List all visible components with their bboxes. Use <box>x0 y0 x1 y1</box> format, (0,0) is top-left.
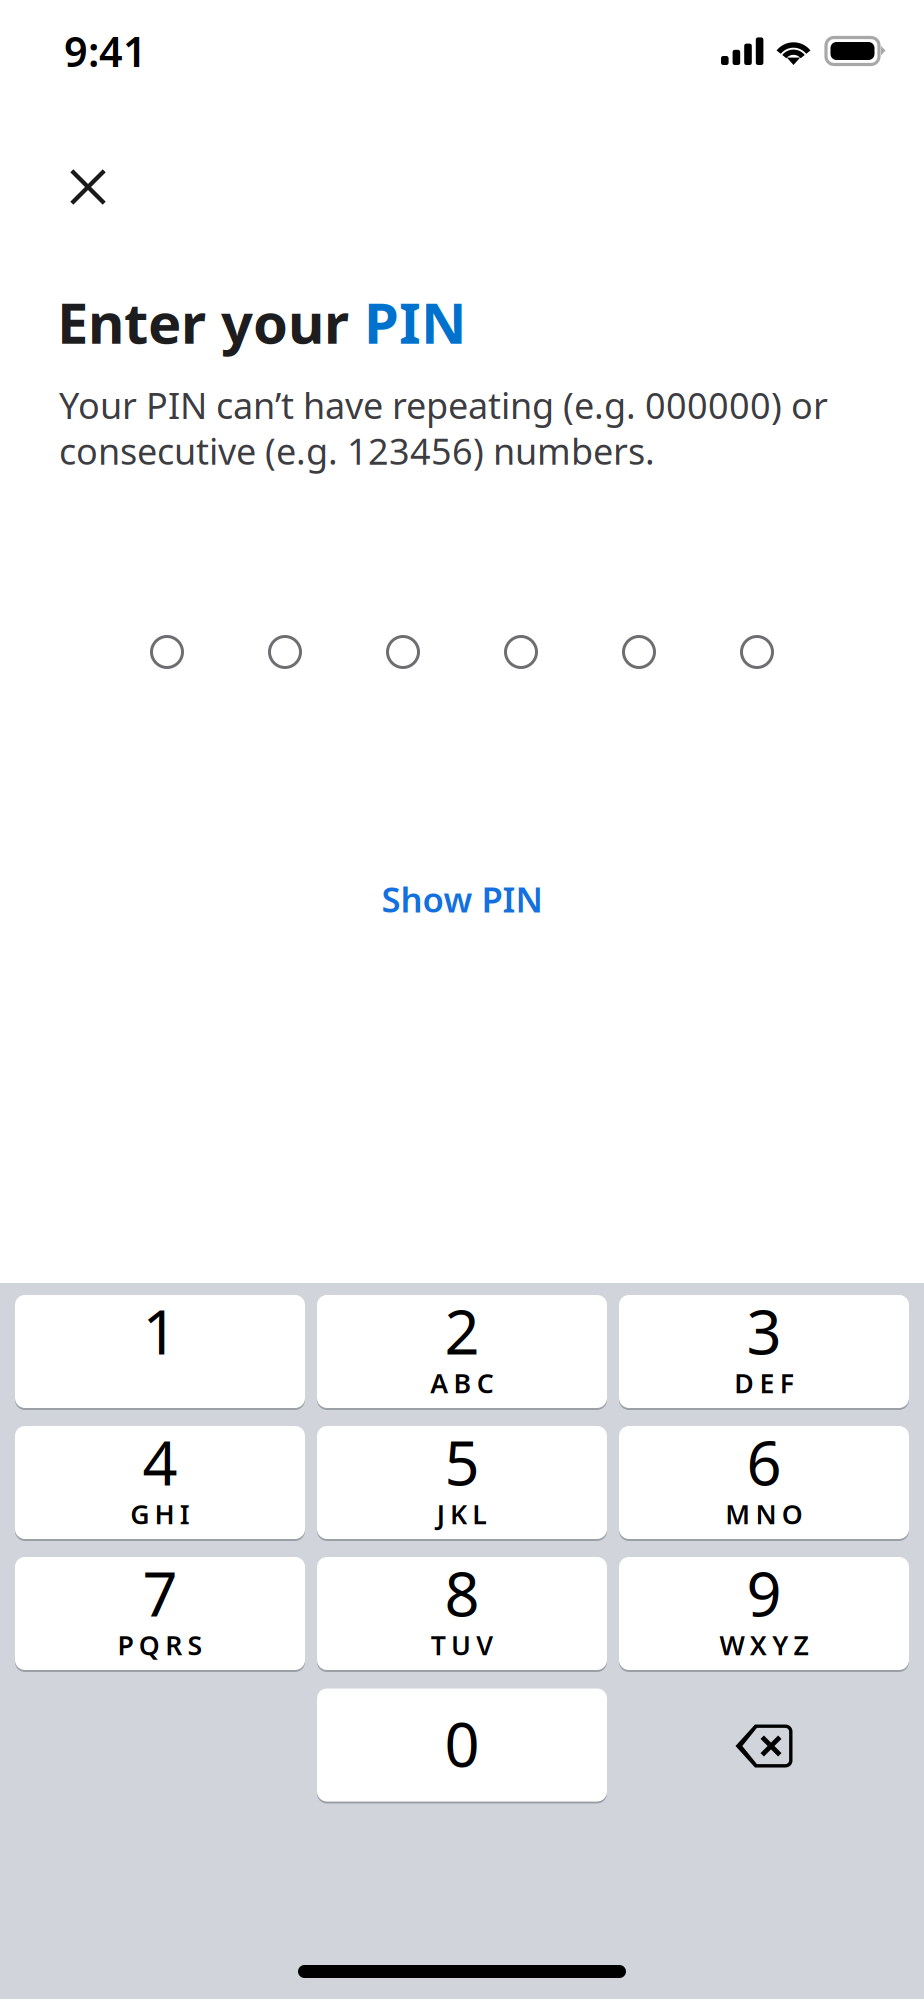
button[interactable]: 5 <box>317 1427 607 1540</box>
button[interactable]: 8 <box>317 1558 607 1671</box>
button[interactable]: 6 <box>619 1427 909 1540</box>
staticText: ABC <box>430 1365 494 1401</box>
staticText: 5 <box>444 1421 479 1502</box>
staticText: 3 <box>746 1290 781 1371</box>
staticText: 9 <box>746 1552 781 1633</box>
staticText: PIN <box>364 285 467 359</box>
staticText: Show PIN <box>381 876 542 922</box>
staticText: 7 <box>142 1552 177 1633</box>
staticText: DEF <box>734 1365 794 1401</box>
button[interactable]: 2 <box>317 1296 607 1409</box>
staticText: WXYZ <box>720 1627 808 1663</box>
staticText: 6 <box>746 1421 781 1502</box>
staticText: 1 <box>142 1290 177 1371</box>
button[interactable]: Show PIN <box>337 874 587 924</box>
button[interactable]: 1 <box>15 1296 305 1409</box>
staticText: JKL <box>437 1496 487 1532</box>
staticText: 9:41 <box>64 24 147 78</box>
staticText: 4 <box>142 1421 177 1502</box>
staticText: 8 <box>444 1552 479 1633</box>
button[interactable]: 0 <box>317 1689 607 1802</box>
staticText: 2 <box>444 1290 479 1371</box>
staticText: MNO <box>725 1496 803 1532</box>
button[interactable]: 4 <box>15 1427 305 1540</box>
staticText: GHI <box>130 1496 190 1532</box>
button[interactable]: Close <box>42 141 134 233</box>
staticText: PQRS <box>118 1627 202 1663</box>
button[interactable]: 7 <box>15 1558 305 1671</box>
button[interactable]: 9 <box>619 1558 909 1671</box>
staticText: TUV <box>431 1627 493 1663</box>
staticText: Enter your <box>57 285 364 359</box>
button[interactable]: 3 <box>619 1296 909 1409</box>
button[interactable]: Delete <box>619 1689 909 1803</box>
staticText: Your PIN can’t have repeating (e.g. 0000… <box>59 381 828 475</box>
staticText: 0 <box>444 1702 479 1784</box>
